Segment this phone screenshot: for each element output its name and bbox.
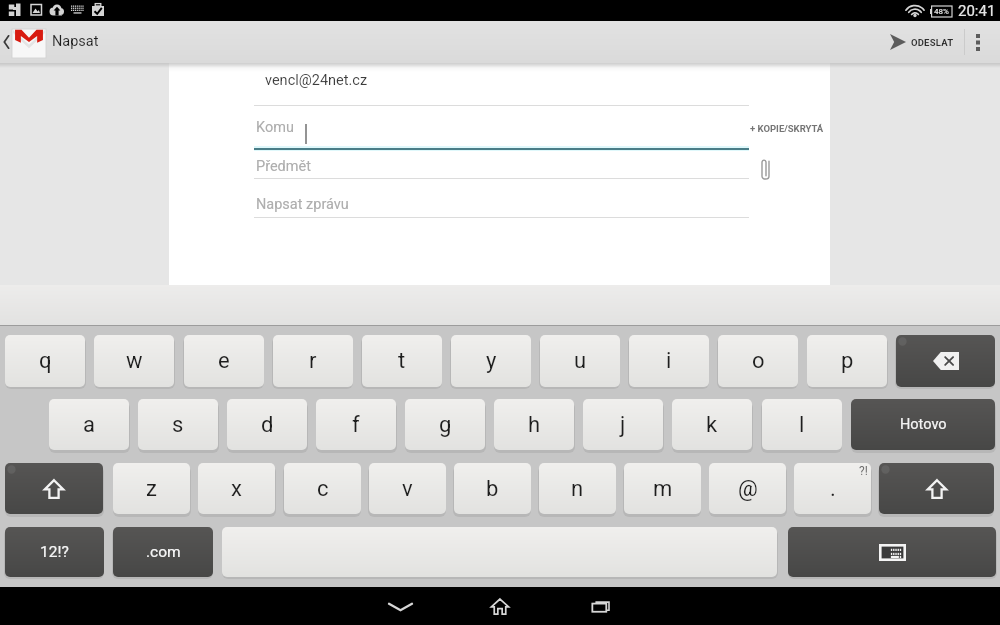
staticText: a [83, 412, 95, 438]
staticText: w [126, 348, 143, 374]
staticText: Napsat zprávu [256, 196, 349, 213]
staticText: Předmět [256, 158, 311, 175]
button[interactable]: j [583, 399, 663, 450]
staticText: vencl@24net.cz [265, 72, 368, 89]
staticText: c [317, 476, 329, 502]
button[interactable]: Hotovo [851, 399, 995, 450]
staticText: Hotovo [900, 416, 947, 433]
staticText: r [309, 348, 317, 374]
button[interactable]: More options [965, 21, 991, 63]
button[interactable]: Space [222, 527, 777, 577]
staticText: h [528, 412, 541, 438]
button[interactable]: Shift [879, 463, 994, 514]
staticText: p [841, 348, 854, 374]
staticText: s [172, 412, 184, 438]
staticText: 48% [934, 7, 949, 16]
button[interactable]: .com [113, 527, 213, 577]
staticText: o [752, 348, 765, 374]
button[interactable]: k [672, 399, 752, 450]
button[interactable]: w [94, 335, 174, 387]
button[interactable]: z [113, 463, 190, 514]
staticText: k [706, 412, 718, 438]
button[interactable]: q [5, 335, 85, 387]
staticText: n [571, 476, 584, 502]
staticText: l [799, 412, 805, 438]
staticText: Komu [256, 119, 294, 136]
button[interactable]: l [762, 399, 842, 450]
button[interactable]: x [198, 463, 275, 514]
button[interactable]: f [316, 399, 396, 450]
staticText: f [352, 412, 360, 438]
staticText: b [486, 476, 499, 502]
button[interactable]: + KOPIE/SKRYTÁ [750, 123, 824, 134]
button[interactable]: Shift [5, 463, 103, 514]
staticText: .com [146, 543, 181, 561]
staticText: u [574, 348, 587, 374]
button[interactable]: Backspace [896, 335, 995, 387]
button[interactable]: ODESLAT [878, 21, 964, 63]
button[interactable]: e [184, 335, 264, 387]
button[interactable]: s [138, 399, 218, 450]
staticText: . [830, 476, 836, 502]
button[interactable]: u [540, 335, 620, 387]
staticText: d [261, 412, 274, 438]
staticText: x [231, 476, 242, 502]
staticText: v [402, 476, 413, 502]
button[interactable]: Recent apps [570, 587, 630, 625]
button[interactable]: y [451, 335, 531, 387]
button[interactable]: o [718, 335, 798, 387]
button[interactable]: Attach file [753, 156, 779, 182]
button[interactable]: Hide keyboard [370, 587, 430, 625]
staticText: g [439, 412, 452, 438]
staticText: j [620, 412, 626, 438]
staticText: ?! [859, 464, 868, 478]
staticText: 12!? [40, 543, 69, 561]
button[interactable]: Navigate up [0, 21, 99, 63]
button[interactable]: n [539, 463, 616, 514]
button[interactable]: @ [709, 463, 786, 514]
staticText: e [218, 348, 230, 374]
staticText: z [146, 476, 157, 502]
staticText: Napsat [52, 33, 99, 50]
staticText: @ [738, 476, 758, 502]
button[interactable]: b [454, 463, 531, 514]
button[interactable]: 12!? [5, 527, 104, 577]
button[interactable]: c [284, 463, 361, 514]
button[interactable]: . [794, 463, 871, 514]
staticText: m [653, 476, 673, 502]
staticText: i [666, 348, 672, 374]
staticText: q [39, 348, 52, 374]
staticText: t [398, 348, 406, 374]
button[interactable]: g [405, 399, 485, 450]
staticText: 20:41 [958, 2, 996, 20]
button[interactable]: m [624, 463, 701, 514]
button[interactable]: r [273, 335, 353, 387]
button[interactable]: Switch keyboard [788, 527, 996, 577]
button[interactable]: t [362, 335, 442, 387]
button[interactable]: h [494, 399, 574, 450]
button[interactable]: p [807, 335, 887, 387]
button[interactable]: d [227, 399, 307, 450]
staticText: y [486, 348, 497, 374]
button[interactable]: i [629, 335, 709, 387]
button[interactable]: a [49, 399, 129, 450]
staticText: ODESLAT [911, 37, 954, 48]
button[interactable]: Home [470, 587, 530, 625]
button[interactable]: v [369, 463, 446, 514]
